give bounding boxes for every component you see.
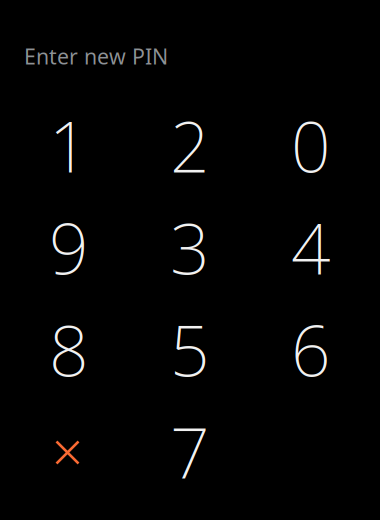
staticText: 8 [49, 303, 89, 396]
button[interactable]: 8 [8, 298, 129, 400]
button[interactable]: 0 [250, 94, 371, 196]
staticText: 0 [291, 99, 331, 192]
button[interactable]: 5 [129, 298, 250, 400]
button[interactable]: 3 [129, 196, 250, 298]
button[interactable]: 7 [129, 400, 250, 502]
button[interactable]: 6 [250, 298, 371, 400]
staticText: 9 [49, 201, 89, 294]
button[interactable]: 1 [8, 94, 129, 196]
staticText: 5 [170, 303, 210, 396]
button[interactable]: Delete [8, 400, 129, 502]
button[interactable]: 4 [250, 196, 371, 298]
staticText: 2 [170, 99, 210, 192]
staticText: 4 [291, 201, 331, 294]
staticText: Enter new PIN [24, 42, 168, 70]
staticText: 6 [291, 303, 331, 396]
staticText: 1 [49, 99, 89, 192]
staticText: 7 [170, 405, 210, 498]
staticText: 3 [170, 201, 210, 294]
button[interactable]: 2 [129, 94, 250, 196]
button[interactable]: 9 [8, 196, 129, 298]
